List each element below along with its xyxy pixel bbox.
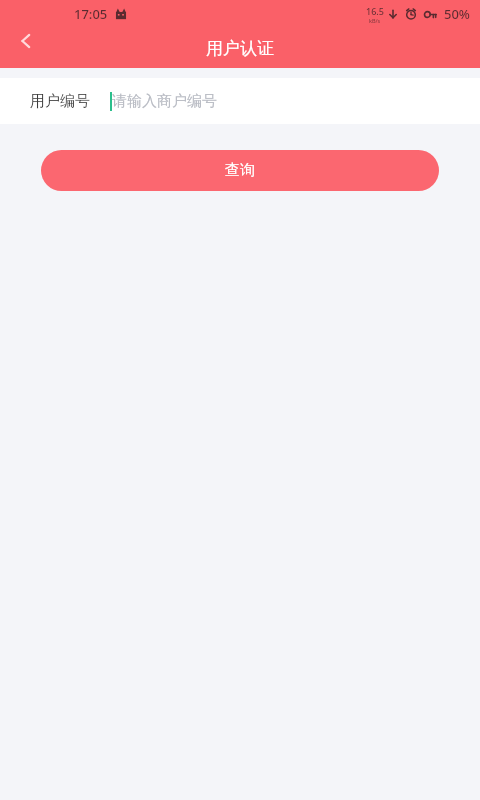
staticText: 50% — [444, 5, 470, 23]
button[interactable]: 用户编号 — [0, 78, 480, 124]
staticText: 16.5 — [366, 5, 384, 17]
staticText: 用户认证 — [206, 38, 274, 59]
button[interactable]: Back — [6, 21, 46, 61]
staticText: 用户编号 — [30, 92, 90, 111]
button[interactable]: 查询 — [41, 150, 439, 191]
staticText: kB/s — [369, 17, 381, 24]
staticText: 请输入商户编号 — [112, 92, 217, 111]
staticText: 查询 — [225, 161, 255, 180]
staticText: 17:05 — [74, 5, 108, 23]
